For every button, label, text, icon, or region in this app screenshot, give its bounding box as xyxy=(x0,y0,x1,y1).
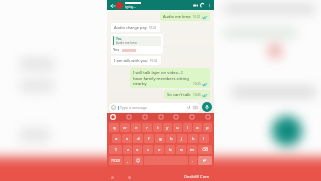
button[interactable]: Video call xyxy=(192,2,199,9)
staticText: m xyxy=(190,147,194,153)
button[interactable]: a xyxy=(112,134,121,143)
button[interactable]: Stickers xyxy=(173,114,179,120)
staticText: 10:45 xyxy=(193,93,201,97)
staticText: f xyxy=(148,136,150,142)
button[interactable]: w xyxy=(120,123,130,132)
button[interactable]: I am talk with you xyxy=(111,56,161,65)
button[interactable]: , xyxy=(124,156,132,165)
staticText: c xyxy=(147,147,150,153)
staticText: v xyxy=(158,147,161,153)
staticText: 10:24 xyxy=(150,59,158,63)
staticText: u xyxy=(176,125,179,131)
staticText: So can't talk xyxy=(167,92,191,97)
button[interactable]: c xyxy=(143,145,153,154)
button[interactable]: v xyxy=(154,145,164,154)
button[interactable]: n xyxy=(176,145,186,154)
button[interactable]: f xyxy=(144,134,154,143)
button[interactable]: y xyxy=(163,123,172,132)
staticText: 10:25 xyxy=(193,82,201,86)
staticText: s xyxy=(126,136,129,142)
button[interactable]: You xyxy=(111,34,163,54)
button[interactable]: More options xyxy=(206,2,212,8)
staticText: ↵ xyxy=(203,158,207,163)
button[interactable]: . xyxy=(189,156,197,165)
button[interactable]: GIF xyxy=(142,114,148,120)
button[interactable]: o xyxy=(193,123,202,132)
staticText: ☺ xyxy=(136,158,141,163)
button[interactable]: h xyxy=(166,134,176,143)
staticText: t xyxy=(157,125,159,131)
button[interactable]: b xyxy=(165,145,175,154)
staticText: o xyxy=(196,125,199,131)
staticText: Audio me krna xyxy=(116,41,137,45)
button[interactable]: ⌫ xyxy=(198,145,212,154)
staticText: 10:22 xyxy=(193,15,201,19)
staticText: e xyxy=(135,125,138,131)
staticText: h xyxy=(170,136,173,142)
button[interactable]: t xyxy=(153,123,162,132)
button[interactable]: Back xyxy=(109,2,116,9)
staticText: w xyxy=(123,125,127,131)
staticText: 10:23 xyxy=(149,26,157,30)
button[interactable]: e xyxy=(131,123,141,132)
staticText: Type a message xyxy=(120,105,186,110)
staticText: Audio charge pay xyxy=(114,25,147,30)
staticText: Yes xyxy=(113,47,120,52)
staticText: Deskit9 Com xyxy=(184,174,210,180)
staticText: p xyxy=(206,125,209,131)
staticText: z xyxy=(127,147,129,153)
button[interactable]: Profile photo xyxy=(116,2,123,9)
button[interactable]: Voice xyxy=(205,114,211,120)
button[interactable]: ?123 xyxy=(109,156,123,165)
button[interactable]: Minimize xyxy=(189,114,195,120)
button[interactable]: ⇧ xyxy=(109,145,122,154)
button[interactable]: Record voice message xyxy=(202,102,212,112)
button[interactable]: r xyxy=(142,123,152,132)
staticText: You xyxy=(116,37,122,41)
button[interactable]: m xyxy=(187,145,197,154)
button[interactable]: Audio charge pay xyxy=(111,23,160,32)
staticText: d xyxy=(137,136,140,142)
staticText: r xyxy=(146,125,148,131)
button[interactable]: Enter xyxy=(198,156,212,165)
staticText: i xyxy=(187,125,189,131)
button[interactable]: Settings xyxy=(158,114,164,120)
staticText: ?123 xyxy=(111,158,121,164)
staticText: x xyxy=(136,147,139,153)
button[interactable]: Keyboard settings xyxy=(110,114,116,120)
button[interactable]: ☺ xyxy=(133,156,143,165)
staticText: ⇧ xyxy=(114,147,118,152)
staticText: k xyxy=(192,136,195,142)
staticText: I am talk with you xyxy=(114,58,148,63)
button[interactable]: Audio me krna xyxy=(160,12,210,21)
button[interactable]: k xyxy=(188,134,198,143)
staticText: j xyxy=(181,136,183,142)
button[interactable]: p xyxy=(203,123,212,132)
button[interactable]: typing… xyxy=(125,2,192,9)
button[interactable]: So can't talk xyxy=(164,90,210,99)
button[interactable]: j xyxy=(177,134,187,143)
staticText: a xyxy=(115,136,118,142)
button[interactable]: q xyxy=(109,123,119,132)
button[interactable]: I will talk lajer on video…I have family… xyxy=(130,68,210,88)
button[interactable]: i xyxy=(183,123,192,132)
staticText: y xyxy=(166,125,169,131)
button[interactable]: s xyxy=(122,134,132,143)
staticText: Audio me krna xyxy=(163,14,191,19)
button[interactable]: l xyxy=(199,134,209,143)
staticText: q xyxy=(113,125,116,131)
staticText: , xyxy=(127,158,129,164)
staticText: b xyxy=(169,147,172,153)
button[interactable]: d xyxy=(133,134,143,143)
staticText: n xyxy=(180,147,183,153)
button[interactable]: u xyxy=(173,123,182,132)
button[interactable]: g xyxy=(155,134,165,143)
staticText: l xyxy=(203,136,205,142)
button[interactable]: x xyxy=(133,145,142,154)
button[interactable]: Themes xyxy=(126,114,132,120)
button[interactable]: z xyxy=(123,145,132,154)
button[interactable]: Type a message xyxy=(109,103,200,112)
staticText: ⌫ xyxy=(202,147,208,152)
button[interactable]: Voice call xyxy=(199,2,206,9)
